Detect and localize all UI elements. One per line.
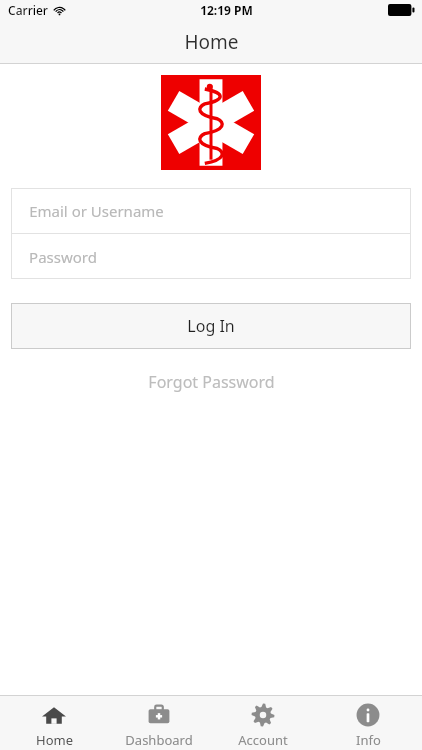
button[interactable]: Password bbox=[11, 234, 411, 279]
button[interactable]: Home bbox=[4, 696, 104, 750]
staticText: Home bbox=[184, 29, 239, 55]
staticText: 12:19 PM bbox=[200, 2, 253, 18]
staticText: Dashboard bbox=[125, 731, 193, 749]
staticText: Account bbox=[238, 731, 288, 749]
staticText: Log In bbox=[187, 315, 235, 337]
button[interactable]: Account bbox=[213, 696, 313, 750]
button[interactable]: Info bbox=[318, 696, 418, 750]
button[interactable]: Logo bbox=[161, 75, 261, 170]
staticText: Info bbox=[356, 731, 381, 749]
staticText: Password bbox=[29, 247, 97, 267]
staticText: Forgot Password bbox=[148, 371, 275, 393]
staticText: Home bbox=[36, 731, 73, 749]
button[interactable]: Log In bbox=[11, 303, 411, 349]
button[interactable]: Dashboard bbox=[109, 696, 209, 750]
button[interactable]: Email or Username bbox=[11, 188, 411, 233]
button[interactable]: Forgot Password bbox=[0, 367, 422, 397]
staticText: Email or Username bbox=[29, 201, 164, 221]
staticText: Carrier bbox=[8, 2, 48, 18]
